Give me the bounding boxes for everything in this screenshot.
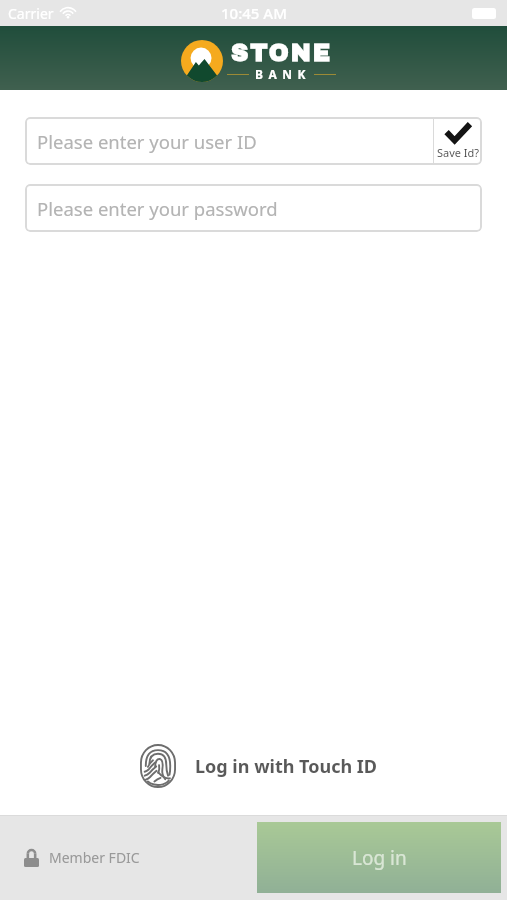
button[interactable]: Log in with Touch ID: [140, 744, 378, 788]
staticText: Log in: [352, 845, 407, 871]
staticText: STONE: [231, 40, 333, 66]
staticText: BANK: [255, 66, 312, 82]
button[interactable]: Please enter your user ID: [25, 117, 433, 165]
other: Secure: [24, 849, 39, 867]
staticText: Member FDIC: [49, 848, 140, 867]
staticText: Log in with Touch ID: [195, 754, 378, 779]
staticText: Save Id?: [437, 145, 480, 160]
button[interactable]: Please enter your password: [25, 184, 482, 232]
button[interactable]: Log in: [257, 822, 501, 893]
button[interactable]: Save Id: [434, 117, 482, 165]
staticText: Please enter your password: [37, 196, 278, 221]
staticText: Carrier: [8, 4, 54, 23]
staticText: 10:45 AM: [221, 3, 287, 23]
staticText: Please enter your user ID: [37, 129, 257, 154]
